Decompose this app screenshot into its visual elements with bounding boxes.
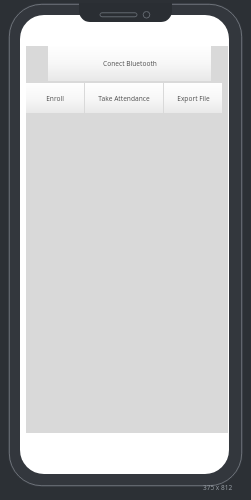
staticText: 375 x 812 — [203, 483, 233, 492]
button[interactable]: Export File — [164, 83, 222, 113]
staticText: Take Attendance — [98, 94, 150, 103]
button[interactable]: Take Attendance — [85, 83, 163, 113]
button[interactable]: Conect Bluetooth — [48, 46, 211, 81]
staticText: Conect Bluetooth — [103, 59, 157, 68]
staticText: Enroll — [46, 94, 64, 103]
staticText: Export File — [177, 94, 210, 103]
other: Device notch — [79, 3, 172, 22]
button[interactable]: Enroll — [26, 83, 84, 113]
